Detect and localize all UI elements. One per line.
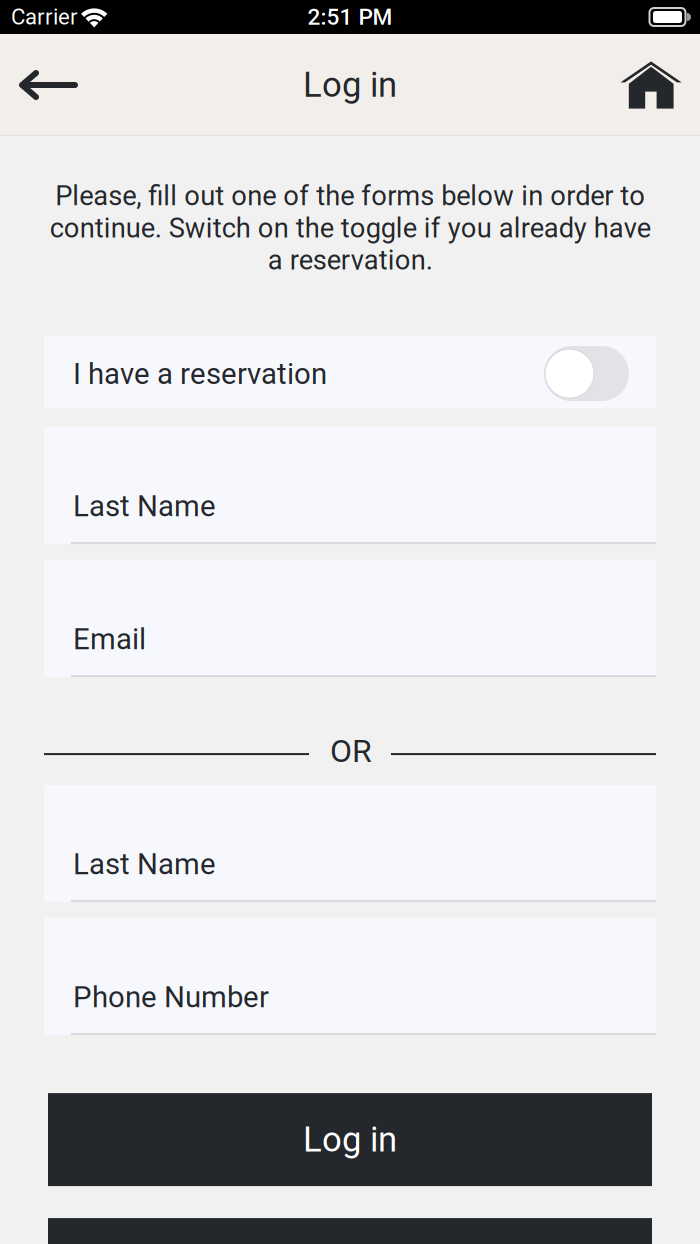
staticText: I have a reservation — [73, 357, 327, 391]
staticText: OR — [330, 732, 372, 770]
staticText: Please, fill out one of the forms below … — [49, 180, 650, 276]
button[interactable]: Last Name — [44, 785, 656, 902]
staticText: Last Name — [73, 489, 216, 523]
staticText: Phone Number — [73, 980, 269, 1014]
button[interactable]: Last Name — [44, 427, 656, 544]
button[interactable]: I have a reservation — [44, 336, 656, 408]
button[interactable]: Back — [0, 34, 110, 136]
staticText: Log in — [303, 1119, 397, 1160]
staticText: Carrier — [11, 4, 78, 30]
button[interactable]: Sign up — [48, 1218, 652, 1244]
button[interactable]: Email — [44, 560, 656, 677]
button[interactable]: Phone Number — [44, 918, 656, 1035]
button[interactable]: Home — [590, 34, 700, 136]
staticText: Log in — [303, 65, 397, 105]
staticText: Email — [73, 622, 146, 656]
staticText: Last Name — [73, 847, 216, 881]
staticText: 2:51 PM — [307, 4, 392, 30]
button[interactable]: Log in — [48, 1093, 652, 1186]
